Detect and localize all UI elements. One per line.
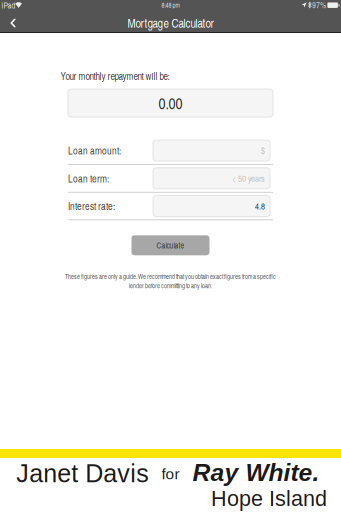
staticText: Interest rate: <box>68 199 115 213</box>
staticText: Mortgage Calculator <box>127 15 213 31</box>
button[interactable]: Back <box>0 14 26 32</box>
staticText: 0.00 <box>158 92 182 113</box>
staticText: Loan term: <box>68 171 109 185</box>
staticText: Your monthly repayment will be: <box>60 69 169 83</box>
button[interactable]: Calculate <box>131 235 209 255</box>
staticText: 8:48 pm <box>162 1 180 10</box>
staticText: Ray White. <box>192 459 319 486</box>
staticText: for <box>161 465 179 482</box>
staticText: These figures are only a guide. We recom… <box>65 272 276 281</box>
staticText: 97% <box>312 0 326 10</box>
staticText: < 50 years <box>232 172 265 184</box>
staticText: Janet Davis <box>16 459 149 487</box>
staticText: Calculate <box>156 240 184 251</box>
staticText: Hope Island <box>211 486 327 510</box>
staticText: Loan amount: <box>68 144 121 157</box>
staticText: iPad <box>2 0 16 11</box>
staticText: lender before committing to any loan. <box>129 281 212 290</box>
staticText: $ <box>261 144 265 157</box>
staticText: 4.8 <box>255 200 265 212</box>
